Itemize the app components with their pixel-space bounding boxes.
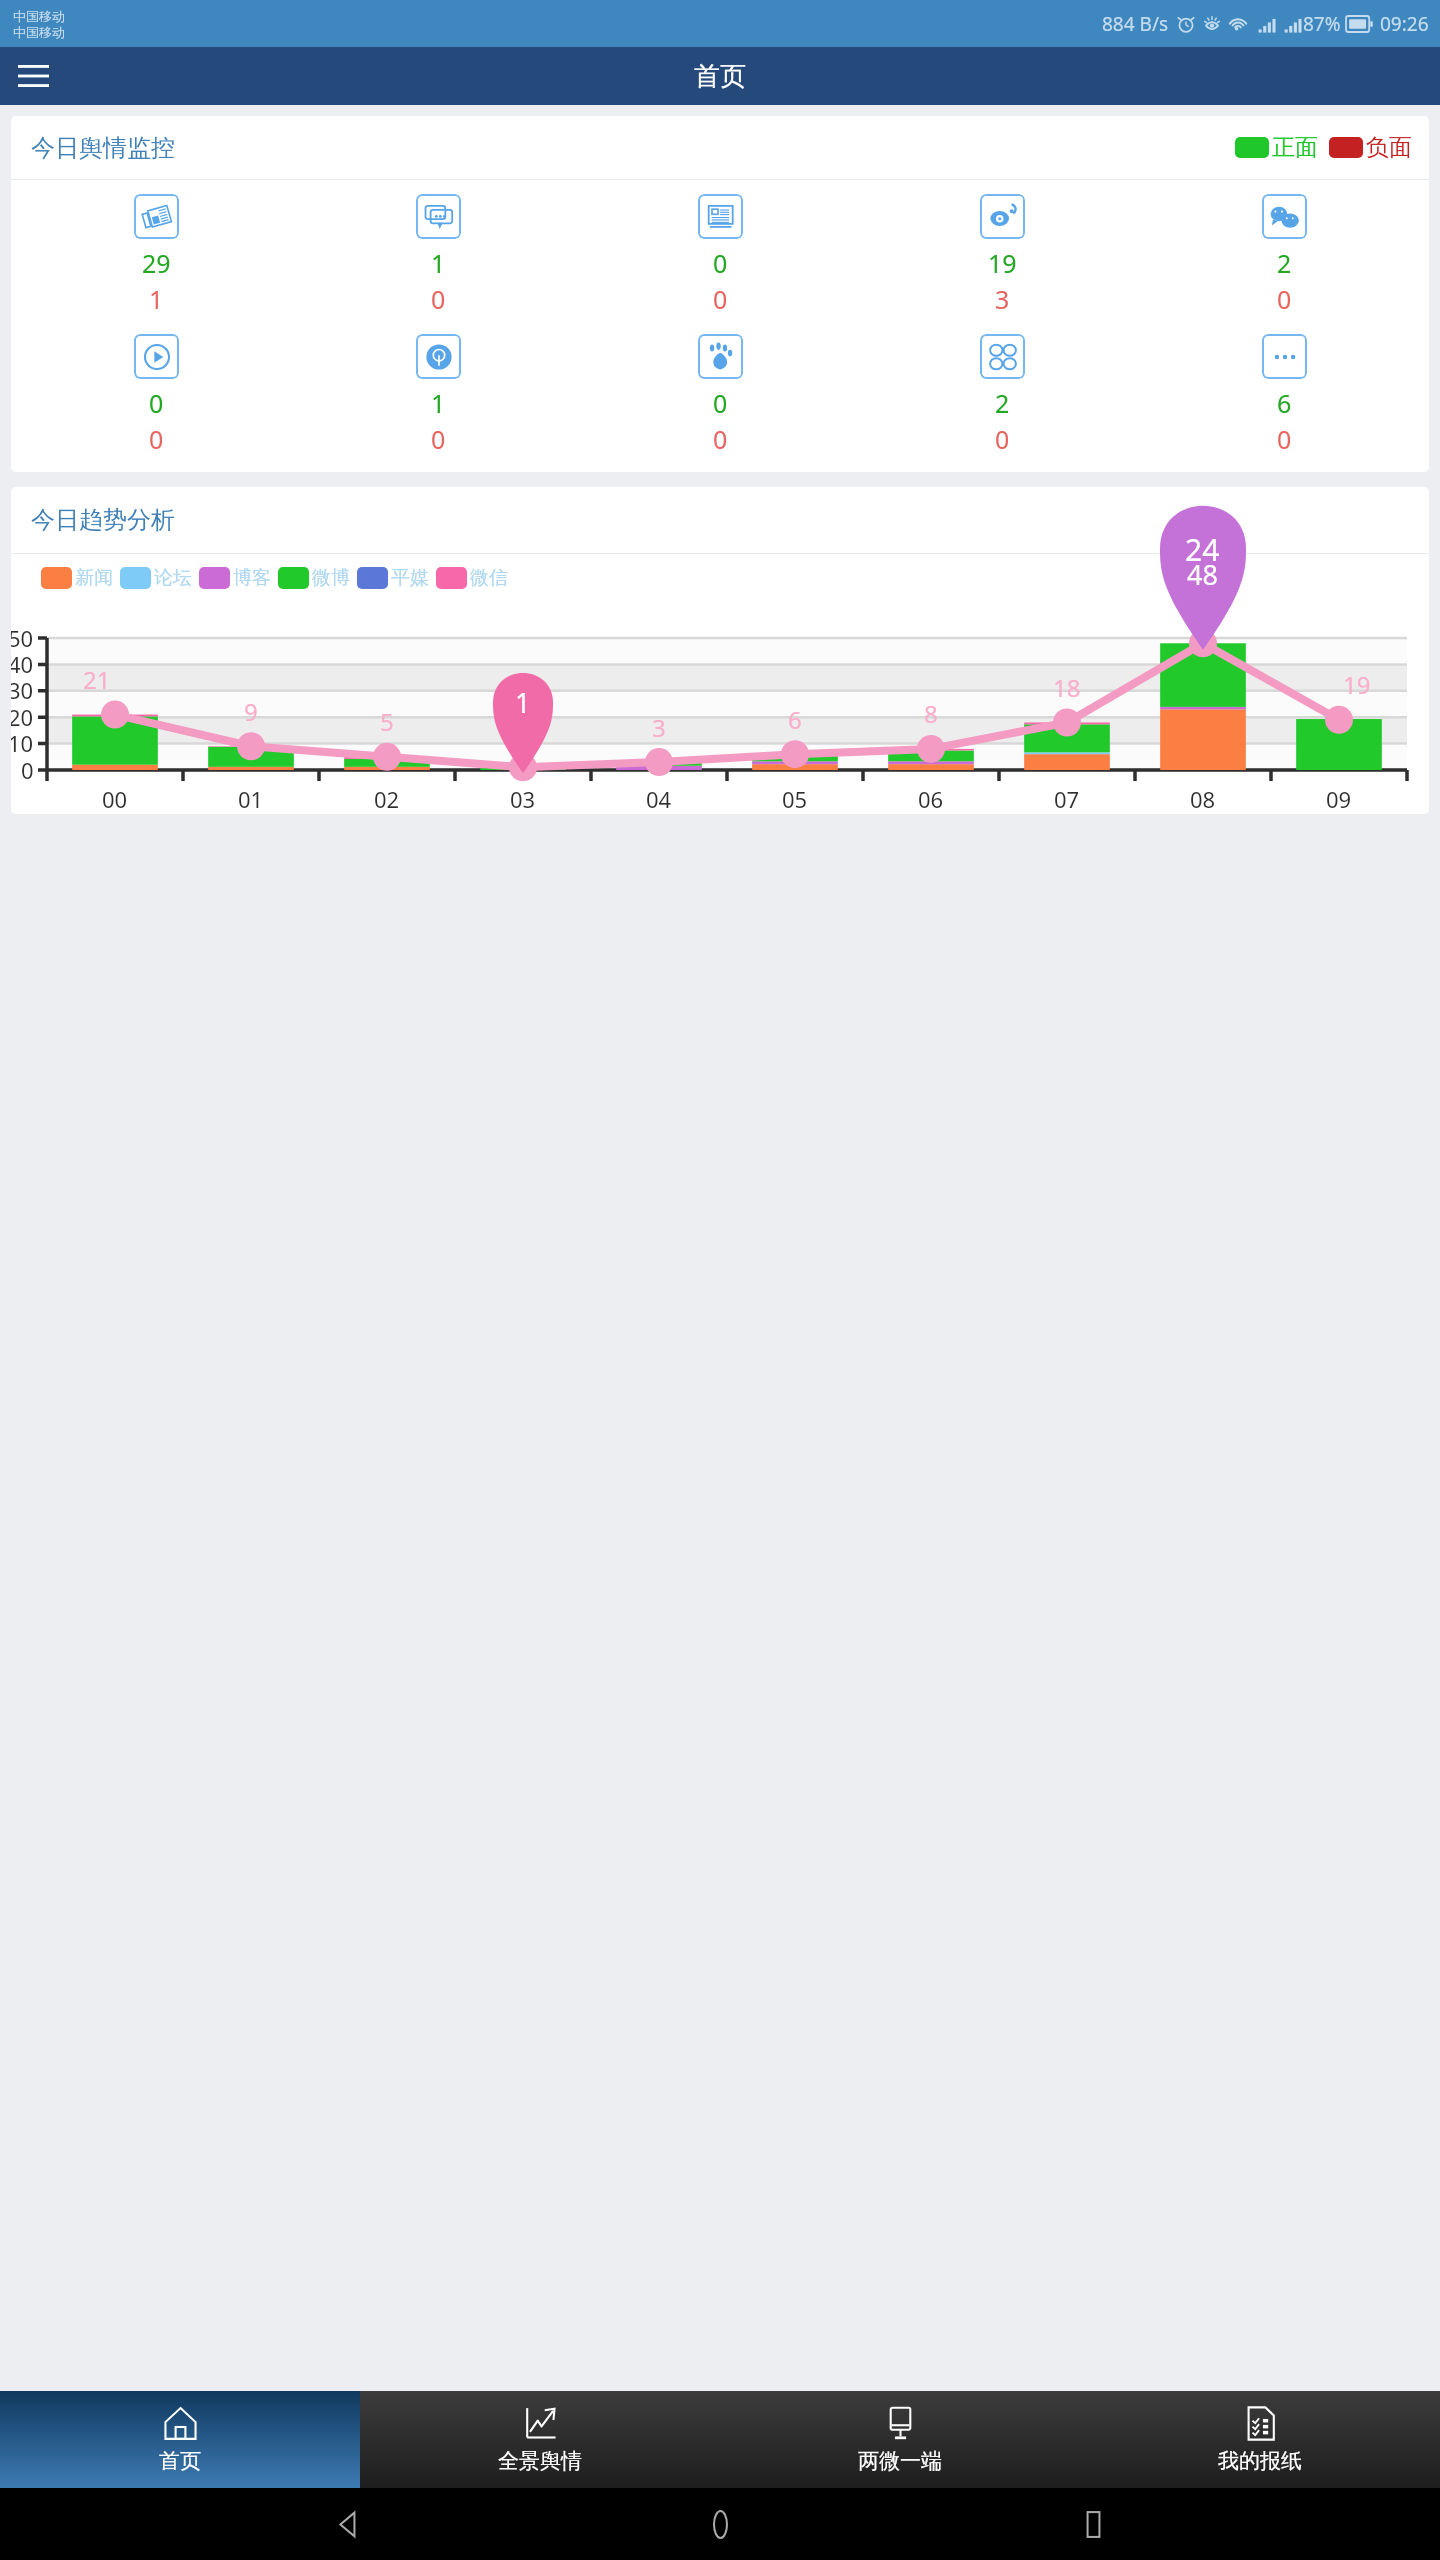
button[interactable]: 全景舆情 bbox=[360, 2391, 720, 2488]
button[interactable]: 首页 bbox=[0, 2391, 360, 2488]
staticText: 04 bbox=[646, 784, 672, 814]
button[interactable]: 6 bbox=[1143, 331, 1425, 459]
button[interactable]: 2 bbox=[861, 331, 1143, 459]
staticText: 1 bbox=[515, 684, 531, 721]
button[interactable]: 两微一端 bbox=[720, 2391, 1080, 2488]
staticText: 9 bbox=[244, 695, 258, 728]
button[interactable]: 29 bbox=[15, 191, 297, 319]
staticText: 05 bbox=[782, 784, 808, 814]
staticText: 中国移动 bbox=[13, 8, 65, 24]
staticText: 2 bbox=[1277, 246, 1292, 280]
staticText: 21 bbox=[83, 663, 111, 696]
staticText: 07 bbox=[1054, 784, 1080, 814]
button[interactable]: Back bbox=[323, 2499, 373, 2549]
staticText: 08 bbox=[1190, 784, 1216, 814]
staticText: 博客 bbox=[233, 566, 271, 590]
staticText: 3 bbox=[995, 282, 1010, 316]
staticText: 0 bbox=[431, 422, 446, 456]
staticText: 0 bbox=[713, 386, 728, 420]
staticText: 0 bbox=[713, 282, 728, 316]
staticText: 6 bbox=[788, 703, 802, 736]
staticText: 03 bbox=[510, 784, 536, 814]
button[interactable]: 19 bbox=[861, 191, 1143, 319]
staticText: 0 bbox=[21, 755, 34, 785]
staticText: 负面 bbox=[1366, 133, 1412, 162]
staticText: 微博 bbox=[312, 566, 350, 590]
staticText: 中国移动 bbox=[13, 24, 65, 40]
staticText: 02 bbox=[374, 784, 400, 814]
staticText: 06 bbox=[918, 784, 944, 814]
staticText: 两微一端 bbox=[858, 2448, 942, 2474]
staticText: 全景舆情 bbox=[498, 2448, 582, 2474]
staticText: 0 bbox=[713, 246, 728, 280]
staticText: 0 bbox=[1277, 282, 1292, 316]
staticText: 1 bbox=[149, 282, 164, 316]
staticText: 论坛 bbox=[154, 566, 192, 590]
staticText: 我的报纸 bbox=[1218, 2448, 1302, 2474]
staticText: 0 bbox=[149, 386, 164, 420]
staticText: 5 bbox=[380, 705, 394, 738]
staticText: 平媒 bbox=[391, 566, 429, 590]
staticText: 0 bbox=[995, 422, 1010, 456]
staticText: 微信 bbox=[470, 566, 508, 590]
staticText: 2 bbox=[995, 386, 1010, 420]
button[interactable]: Home bbox=[695, 2499, 745, 2549]
staticText: 884 B/s bbox=[1102, 11, 1169, 37]
button[interactable]: 0 bbox=[15, 331, 297, 459]
button[interactable]: 0 bbox=[579, 191, 861, 319]
staticText: 30 bbox=[11, 675, 34, 705]
staticText: 29 bbox=[142, 246, 171, 280]
staticText: 18 bbox=[1053, 671, 1081, 704]
staticText: 20 bbox=[11, 702, 34, 732]
staticText: 09:26 bbox=[1380, 11, 1429, 37]
staticText: 87% bbox=[1303, 11, 1341, 37]
button[interactable]: Recents bbox=[1068, 2499, 1118, 2549]
staticText: 0 bbox=[1277, 422, 1292, 456]
button[interactable]: Menu bbox=[8, 51, 58, 101]
staticText: 09 bbox=[1326, 784, 1352, 814]
staticText: 6 bbox=[1277, 386, 1292, 420]
button[interactable]: 1 bbox=[297, 191, 579, 319]
button[interactable]: 1 bbox=[297, 331, 579, 459]
staticText: 0 bbox=[713, 422, 728, 456]
button[interactable]: 我的报纸 bbox=[1080, 2391, 1440, 2488]
staticText: 19 bbox=[988, 246, 1017, 280]
staticText: 3 bbox=[652, 711, 666, 744]
staticText: 01 bbox=[238, 784, 264, 814]
staticText: 8 bbox=[924, 697, 938, 730]
staticText: 今日舆情监控 bbox=[31, 133, 175, 163]
staticText: 10 bbox=[11, 728, 34, 758]
staticText: 1 bbox=[431, 386, 446, 420]
staticText: 50 bbox=[11, 623, 34, 653]
button[interactable]: 2 bbox=[1143, 191, 1425, 319]
staticText: 48 bbox=[1187, 556, 1218, 593]
staticText: 0 bbox=[149, 422, 164, 456]
staticText: 40 bbox=[11, 649, 34, 679]
staticText: 首页 bbox=[159, 2448, 201, 2474]
staticText: 1 bbox=[431, 246, 446, 280]
staticText: 24 bbox=[1185, 529, 1220, 570]
staticText: 新闻 bbox=[75, 566, 113, 590]
staticText: 首页 bbox=[694, 60, 746, 93]
staticText: 0 bbox=[431, 282, 446, 316]
staticText: 19 bbox=[1343, 668, 1371, 701]
staticText: 今日趋势分析 bbox=[31, 505, 175, 535]
staticText: 00 bbox=[102, 784, 128, 814]
staticText: 正面 bbox=[1272, 133, 1318, 162]
button[interactable]: 0 bbox=[579, 331, 861, 459]
